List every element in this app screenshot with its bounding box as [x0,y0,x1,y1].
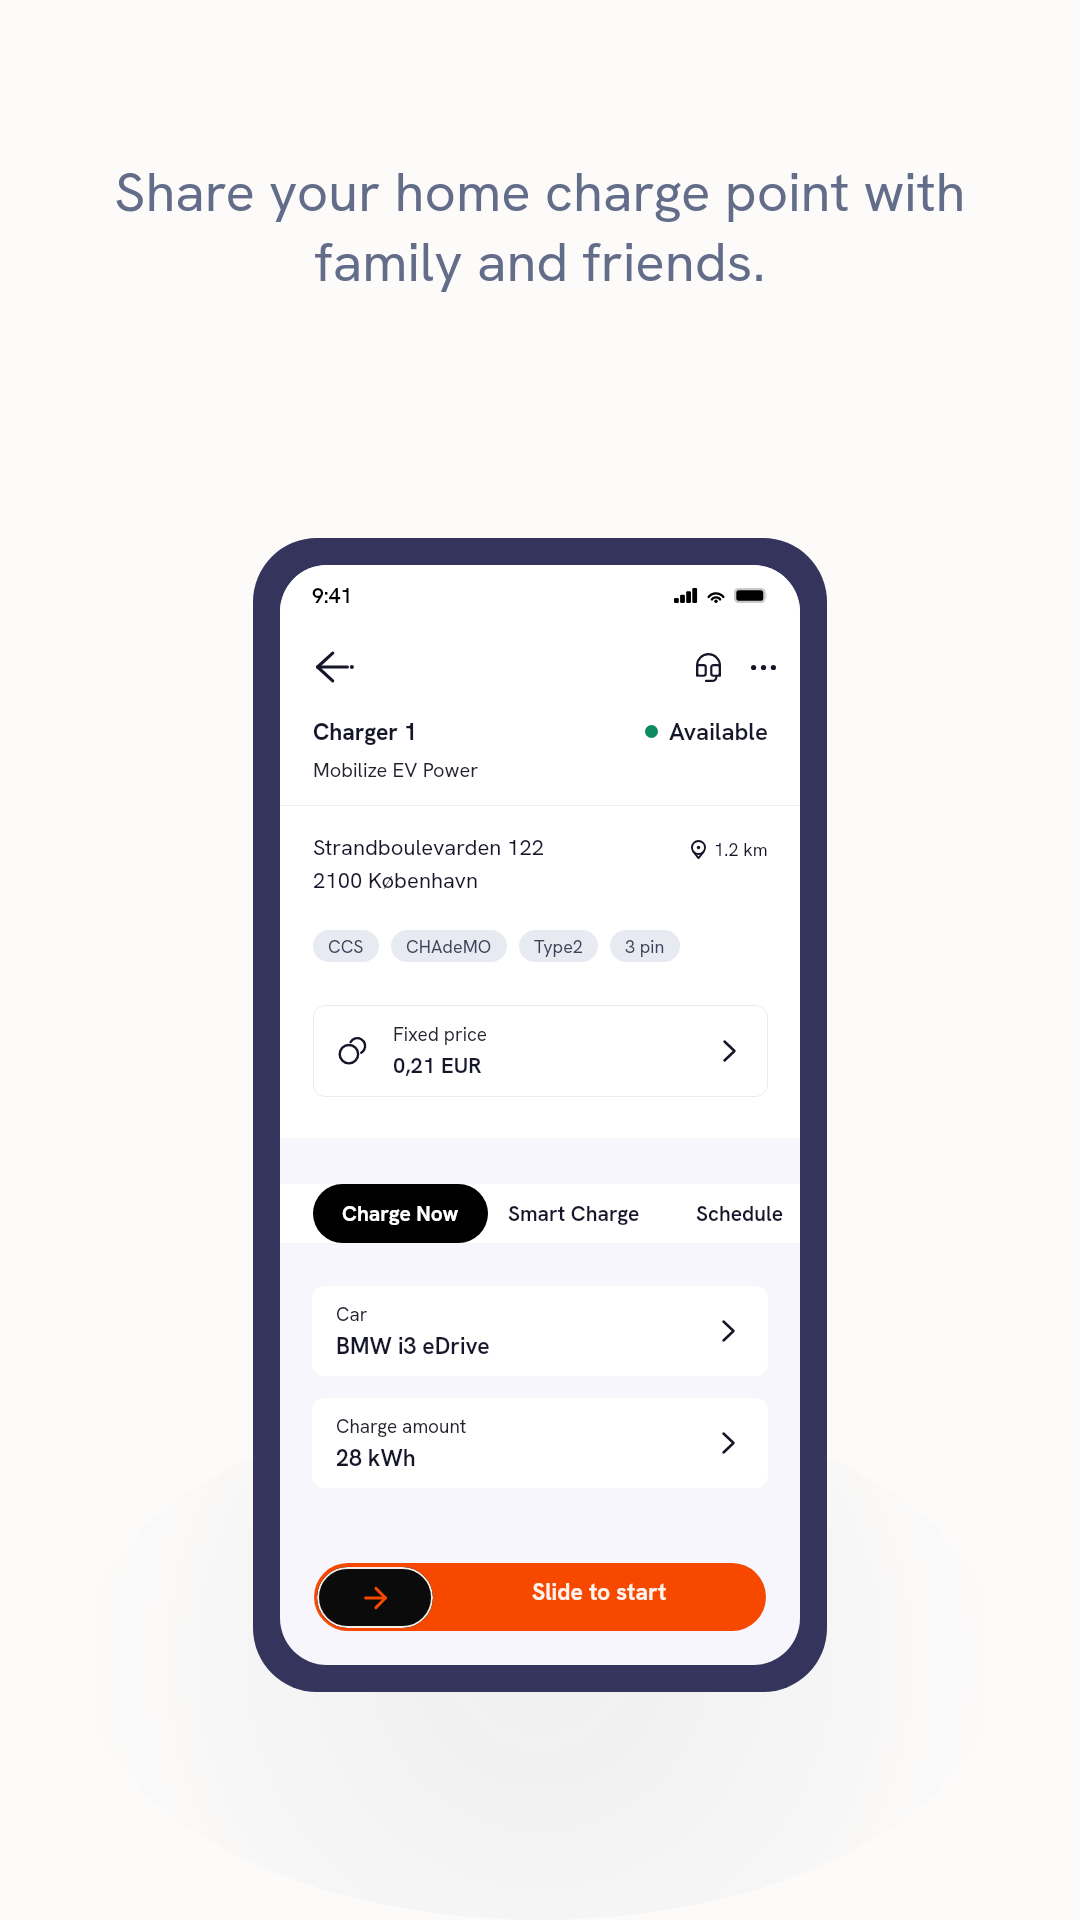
button[interactable]: More options [737,641,789,693]
staticText: Fixed price [393,1022,488,1047]
staticText: Type2 [534,935,583,958]
button[interactable]: Fixed price [313,1005,768,1097]
button[interactable]: Smart Charge [488,1184,660,1243]
button[interactable]: Schedule [660,1184,800,1243]
button[interactable]: CCS [313,930,379,962]
staticText: Slide to start [532,1577,667,1607]
button[interactable]: 3 pin [610,930,680,962]
staticText: Charge Now [342,1200,459,1227]
staticText: 9:41 [312,582,353,609]
staticText: Smart Charge [508,1200,640,1227]
staticText: 1.2 km [714,838,768,861]
staticText: CHAdeMO [406,935,492,958]
staticText: Share your home charge point with family… [62,156,1018,297]
staticText: Schedule [696,1200,784,1227]
staticText: 3 pin [625,935,665,958]
button[interactable]: Type2 [519,930,598,962]
staticText: CCS [328,935,364,958]
button[interactable]: CHAdeMO [391,930,507,962]
staticText: BMW i3 eDrive [336,1331,490,1361]
button[interactable]: Back [302,639,362,695]
button[interactable]: Charge Now [313,1184,488,1243]
staticText: 0,21 EUR [393,1051,482,1080]
button[interactable]: Support [682,641,734,693]
staticText: Strandboulevarden 122 2100 København [313,833,545,895]
button[interactable]: Slide to start [314,1563,766,1631]
button[interactable]: Car [312,1286,768,1376]
staticText: Charger 1 [313,717,417,747]
staticText: Available [669,716,768,747]
staticText: 28 kWh [336,1443,416,1473]
staticText: Charge amount [336,1414,467,1439]
staticText: Car [336,1302,368,1327]
staticText: Mobilize EV Power [313,757,479,783]
button[interactable]: Charge amount [312,1398,768,1488]
